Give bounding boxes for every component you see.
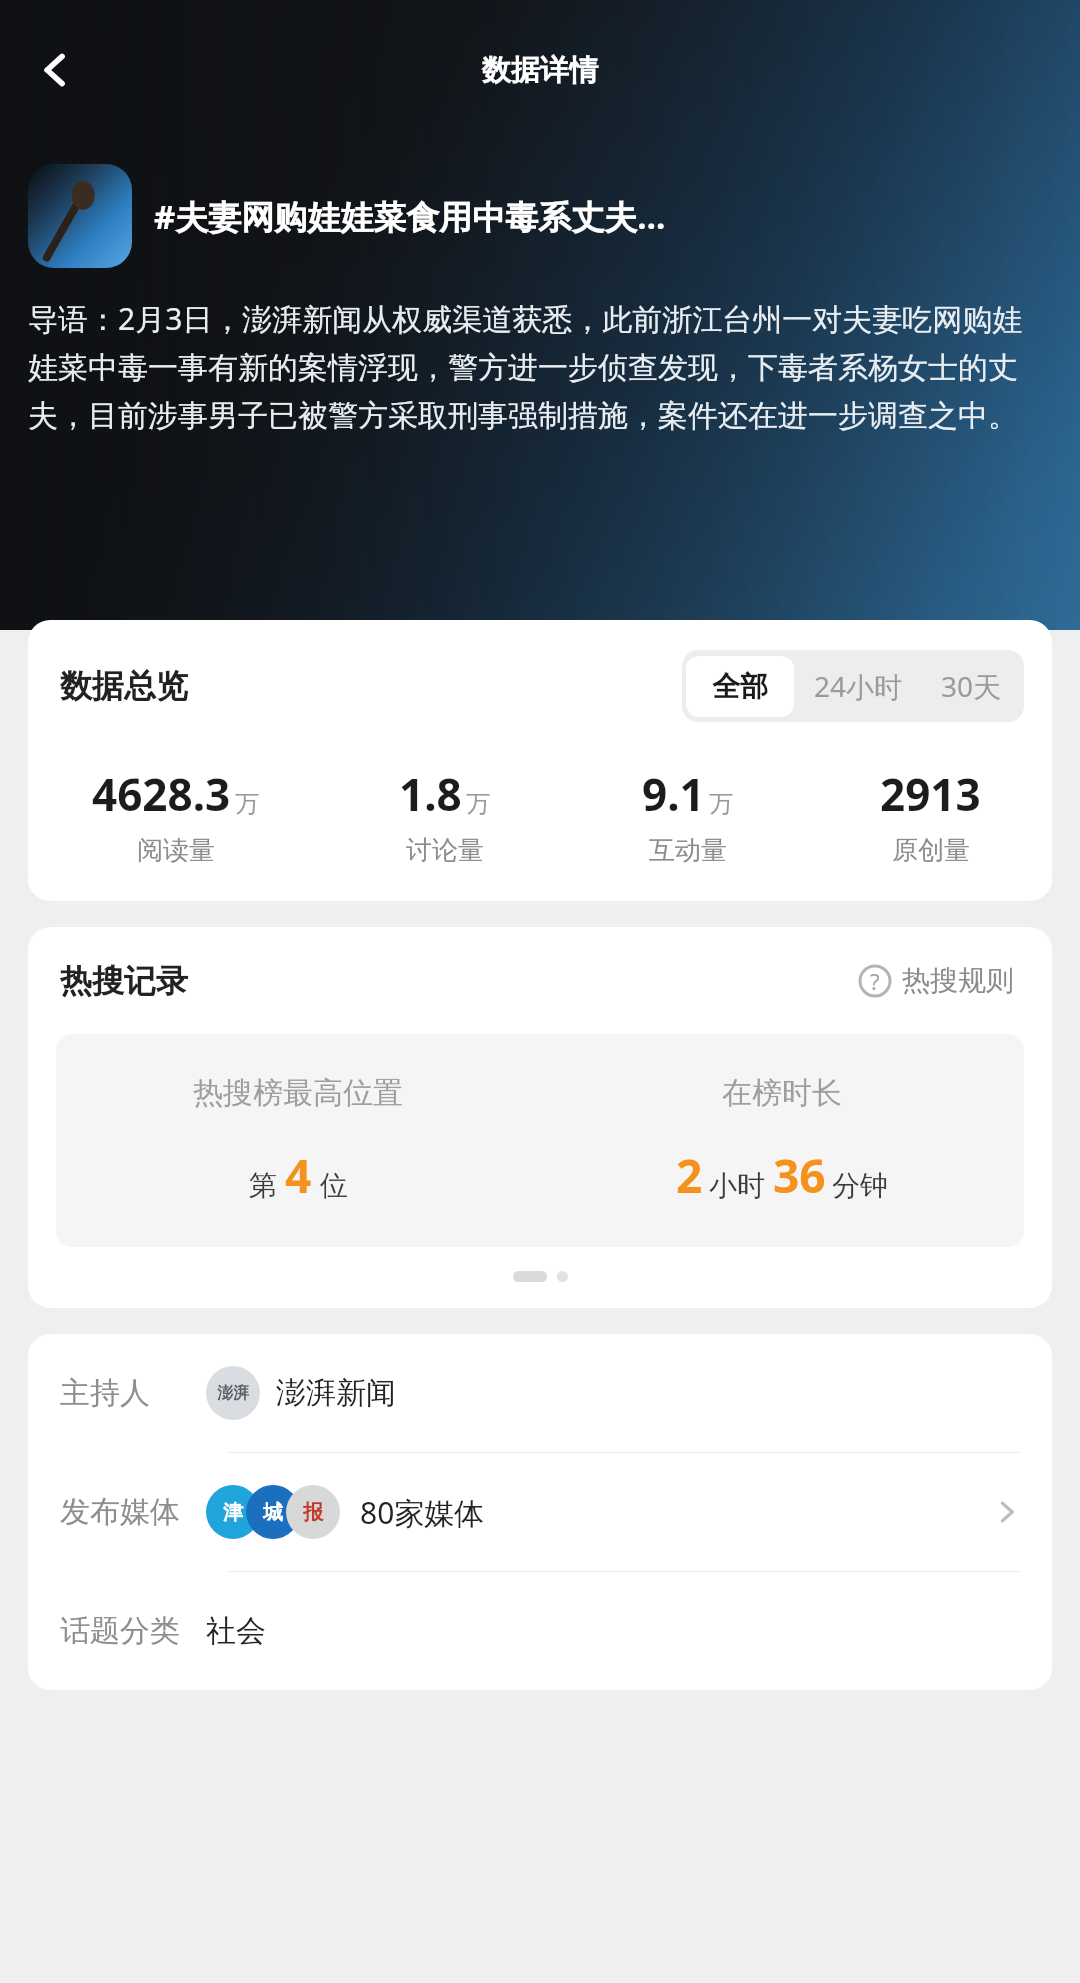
staticText: 1.8 [399,764,462,824]
staticText: 第 [249,1168,277,1203]
staticText: 热搜榜最高位置 [193,1074,403,1112]
staticText: 小时 [709,1168,765,1203]
staticText: 24小时 [814,667,903,705]
staticText: 4628.3 [92,764,231,824]
staticText: 2 [676,1144,703,1207]
staticText: 社会 [206,1612,266,1650]
button[interactable]: 发布媒体 [28,1453,1052,1571]
staticText: 80家媒体 [360,1492,485,1533]
staticText: 话题分类 [60,1612,180,1650]
staticText: 讨论量 [406,834,484,867]
button[interactable]: 全部 [686,656,794,717]
staticText: 36 [773,1144,826,1207]
staticText: 导语：2月3日，澎湃新闻从权威渠道获悉，此前浙江台州一对夫妻吃网购娃娃菜中毒一事… [28,298,1052,435]
staticText: 在榜时长 [722,1074,842,1112]
staticText: 原创量 [892,834,970,867]
button[interactable]: ? [852,957,1020,1004]
button[interactable]: 话题分类 [28,1572,1052,1690]
staticText: 报 [303,1500,323,1525]
staticText: 数据总览 [60,666,188,706]
staticText: 城 [263,1500,283,1525]
button[interactable]: 1.8 [323,764,566,867]
staticText: 分钟 [832,1168,888,1203]
button[interactable]: 30天 [923,654,1020,718]
staticText: 位 [320,1168,348,1203]
staticText: 热搜规则 [902,963,1014,998]
button[interactable]: Back [18,32,94,108]
staticText: 热搜记录 [60,961,188,1001]
staticText: 数据详情 [482,52,598,89]
staticText: 阅读量 [137,834,215,867]
staticText: 万 [235,789,259,819]
staticText: 30天 [941,667,1002,705]
button[interactable]: Topic avatar [28,164,132,268]
staticText: 万 [709,789,733,819]
staticText: 主持人 [60,1374,150,1412]
staticText: 2913 [880,764,981,824]
button[interactable]: 主持人 [28,1334,1052,1452]
staticText: 4 [285,1144,312,1207]
staticText: 9.1 [642,764,705,824]
staticText: 发布媒体 [60,1493,180,1531]
staticText: 全部 [712,669,768,704]
staticText: 澎湃 [217,1383,249,1403]
button[interactable]: 4628.3 [28,764,323,867]
button[interactable]: 9.1 [566,764,809,867]
button[interactable]: 24小时 [794,654,923,718]
staticText: #夫妻网购娃娃菜食用中毒系丈夫… [154,194,666,239]
staticText: ? [870,966,880,996]
staticText: 互动量 [649,834,727,867]
staticText: 津 [223,1500,243,1525]
staticText: 万 [466,789,490,819]
button[interactable]: 2913 [809,764,1052,867]
staticText: 澎湃新闻 [276,1374,396,1412]
